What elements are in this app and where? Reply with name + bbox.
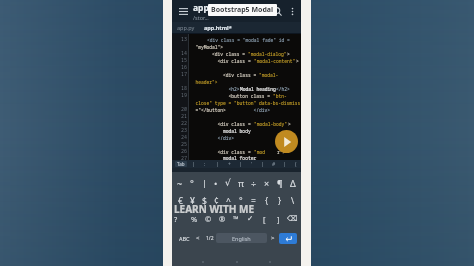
staticText: ®: [219, 214, 226, 224]
staticText: app.html*: [204, 24, 232, 31]
staticText: π: [238, 177, 244, 188]
button[interactable]: ¢: [210, 195, 222, 206]
staticText: "myModal">: [190, 44, 224, 50]
staticText: |: [261, 161, 264, 168]
button[interactable]: ~: [174, 177, 186, 188]
button[interactable]: [: [257, 213, 271, 224]
staticText: ^: [226, 195, 231, 206]
staticText: LEARN WITH ME: [174, 202, 255, 216]
button[interactable]: Δ: [286, 177, 299, 188]
button[interactable]: $: [198, 195, 210, 206]
button[interactable]: Menu: [176, 4, 190, 18]
staticText: ¥: [190, 195, 195, 206]
staticText: 20: [181, 106, 188, 113]
staticText: ©: [205, 214, 212, 224]
button[interactable]: °: [186, 177, 198, 188]
staticText: •: [214, 177, 218, 188]
button[interactable]: Search: [269, 3, 285, 19]
button[interactable]: |: [211, 161, 223, 168]
button[interactable]: |: [257, 161, 268, 168]
button[interactable]: %: [187, 213, 201, 224]
staticText: </div>: [226, 107, 271, 113]
button[interactable]: Next: [267, 231, 279, 245]
button[interactable]: ?123: [174, 213, 187, 224]
staticText: {: [265, 195, 269, 206]
button[interactable]: ™: [229, 213, 243, 224]
button[interactable]: ': [246, 161, 257, 168]
button[interactable]: [235, 260, 239, 264]
staticText: </div>: [190, 135, 235, 141]
button[interactable]: }: [273, 195, 286, 206]
staticText: Tab: [177, 161, 185, 167]
staticText: "mod: [254, 149, 266, 155]
button[interactable]: (: [290, 161, 301, 168]
staticText: |: [239, 161, 242, 168]
staticText: 16: [181, 64, 188, 71]
button[interactable]: €: [174, 195, 186, 206]
staticText: ¶: [277, 177, 283, 188]
staticText: <div class = "modal fade" id =: [207, 37, 290, 43]
staticText: 19: [181, 92, 188, 99]
button[interactable]: =: [247, 195, 260, 206]
staticText: 23: [181, 127, 188, 134]
staticText: 1/2: [206, 235, 214, 242]
button[interactable]: ]: [271, 213, 285, 224]
button[interactable]: ^: [222, 195, 234, 206]
staticText: \: [291, 195, 295, 206]
staticText: >: [287, 51, 290, 57]
button[interactable]: √: [222, 177, 234, 188]
staticText: "modal-content": [254, 58, 296, 64]
staticText: °: [239, 195, 243, 206]
button[interactable]: π: [234, 177, 247, 188]
staticText: modal body: [190, 128, 251, 134]
button[interactable]: ×: [260, 177, 273, 188]
button[interactable]: Previous: [192, 231, 204, 245]
button[interactable]: |: [279, 161, 290, 168]
button[interactable]: ©: [201, 213, 215, 224]
button[interactable]: :: [199, 161, 211, 168]
staticText: ™: [233, 214, 239, 224]
button[interactable]: ¥: [186, 195, 198, 206]
button[interactable]: #: [268, 161, 279, 168]
button[interactable]: ÷: [247, 177, 260, 188]
button[interactable]: Run: [275, 130, 298, 153]
button[interactable]: More options: [285, 3, 299, 19]
staticText: <h2>: [190, 86, 240, 92]
button[interactable]: ⌫: [285, 213, 299, 224]
button[interactable]: app.py: [177, 24, 195, 31]
button[interactable]: [268, 260, 272, 264]
button[interactable]: \: [286, 195, 299, 206]
staticText: ]: [277, 214, 280, 224]
staticText: <div class =: [190, 51, 248, 57]
button[interactable]: ¶: [273, 177, 286, 188]
staticText: |: [283, 161, 286, 168]
button[interactable]: |: [198, 177, 210, 188]
staticText: |: [216, 161, 219, 168]
button[interactable]: ABC: [176, 231, 192, 245]
button[interactable]: 1/2: [204, 231, 216, 245]
button[interactable]: |: [187, 161, 199, 168]
button[interactable]: Tab: [177, 161, 185, 167]
staticText: 18: [181, 85, 188, 92]
staticText: +: [228, 161, 231, 168]
button[interactable]: {: [260, 195, 273, 206]
staticText: ⌫: [287, 214, 298, 223]
staticText: ="</button>: [190, 107, 226, 113]
button[interactable]: Enter: [279, 233, 297, 244]
staticText: 26: [181, 148, 188, 155]
staticText: <div class =: [190, 72, 259, 78]
button[interactable]: English: [216, 233, 267, 243]
button[interactable]: +: [223, 161, 235, 168]
staticText: <div class =: [190, 58, 254, 64]
button[interactable]: |: [235, 161, 246, 168]
button[interactable]: •: [210, 177, 222, 188]
button[interactable]: °: [234, 195, 247, 206]
button[interactable]: ®: [215, 213, 229, 224]
staticText: 17: [181, 71, 188, 78]
staticText: >: [288, 121, 291, 127]
button[interactable]: app.html*: [204, 24, 232, 31]
button[interactable]: [201, 260, 205, 264]
staticText: ': [251, 161, 253, 168]
button[interactable]: ✓: [243, 213, 257, 224]
